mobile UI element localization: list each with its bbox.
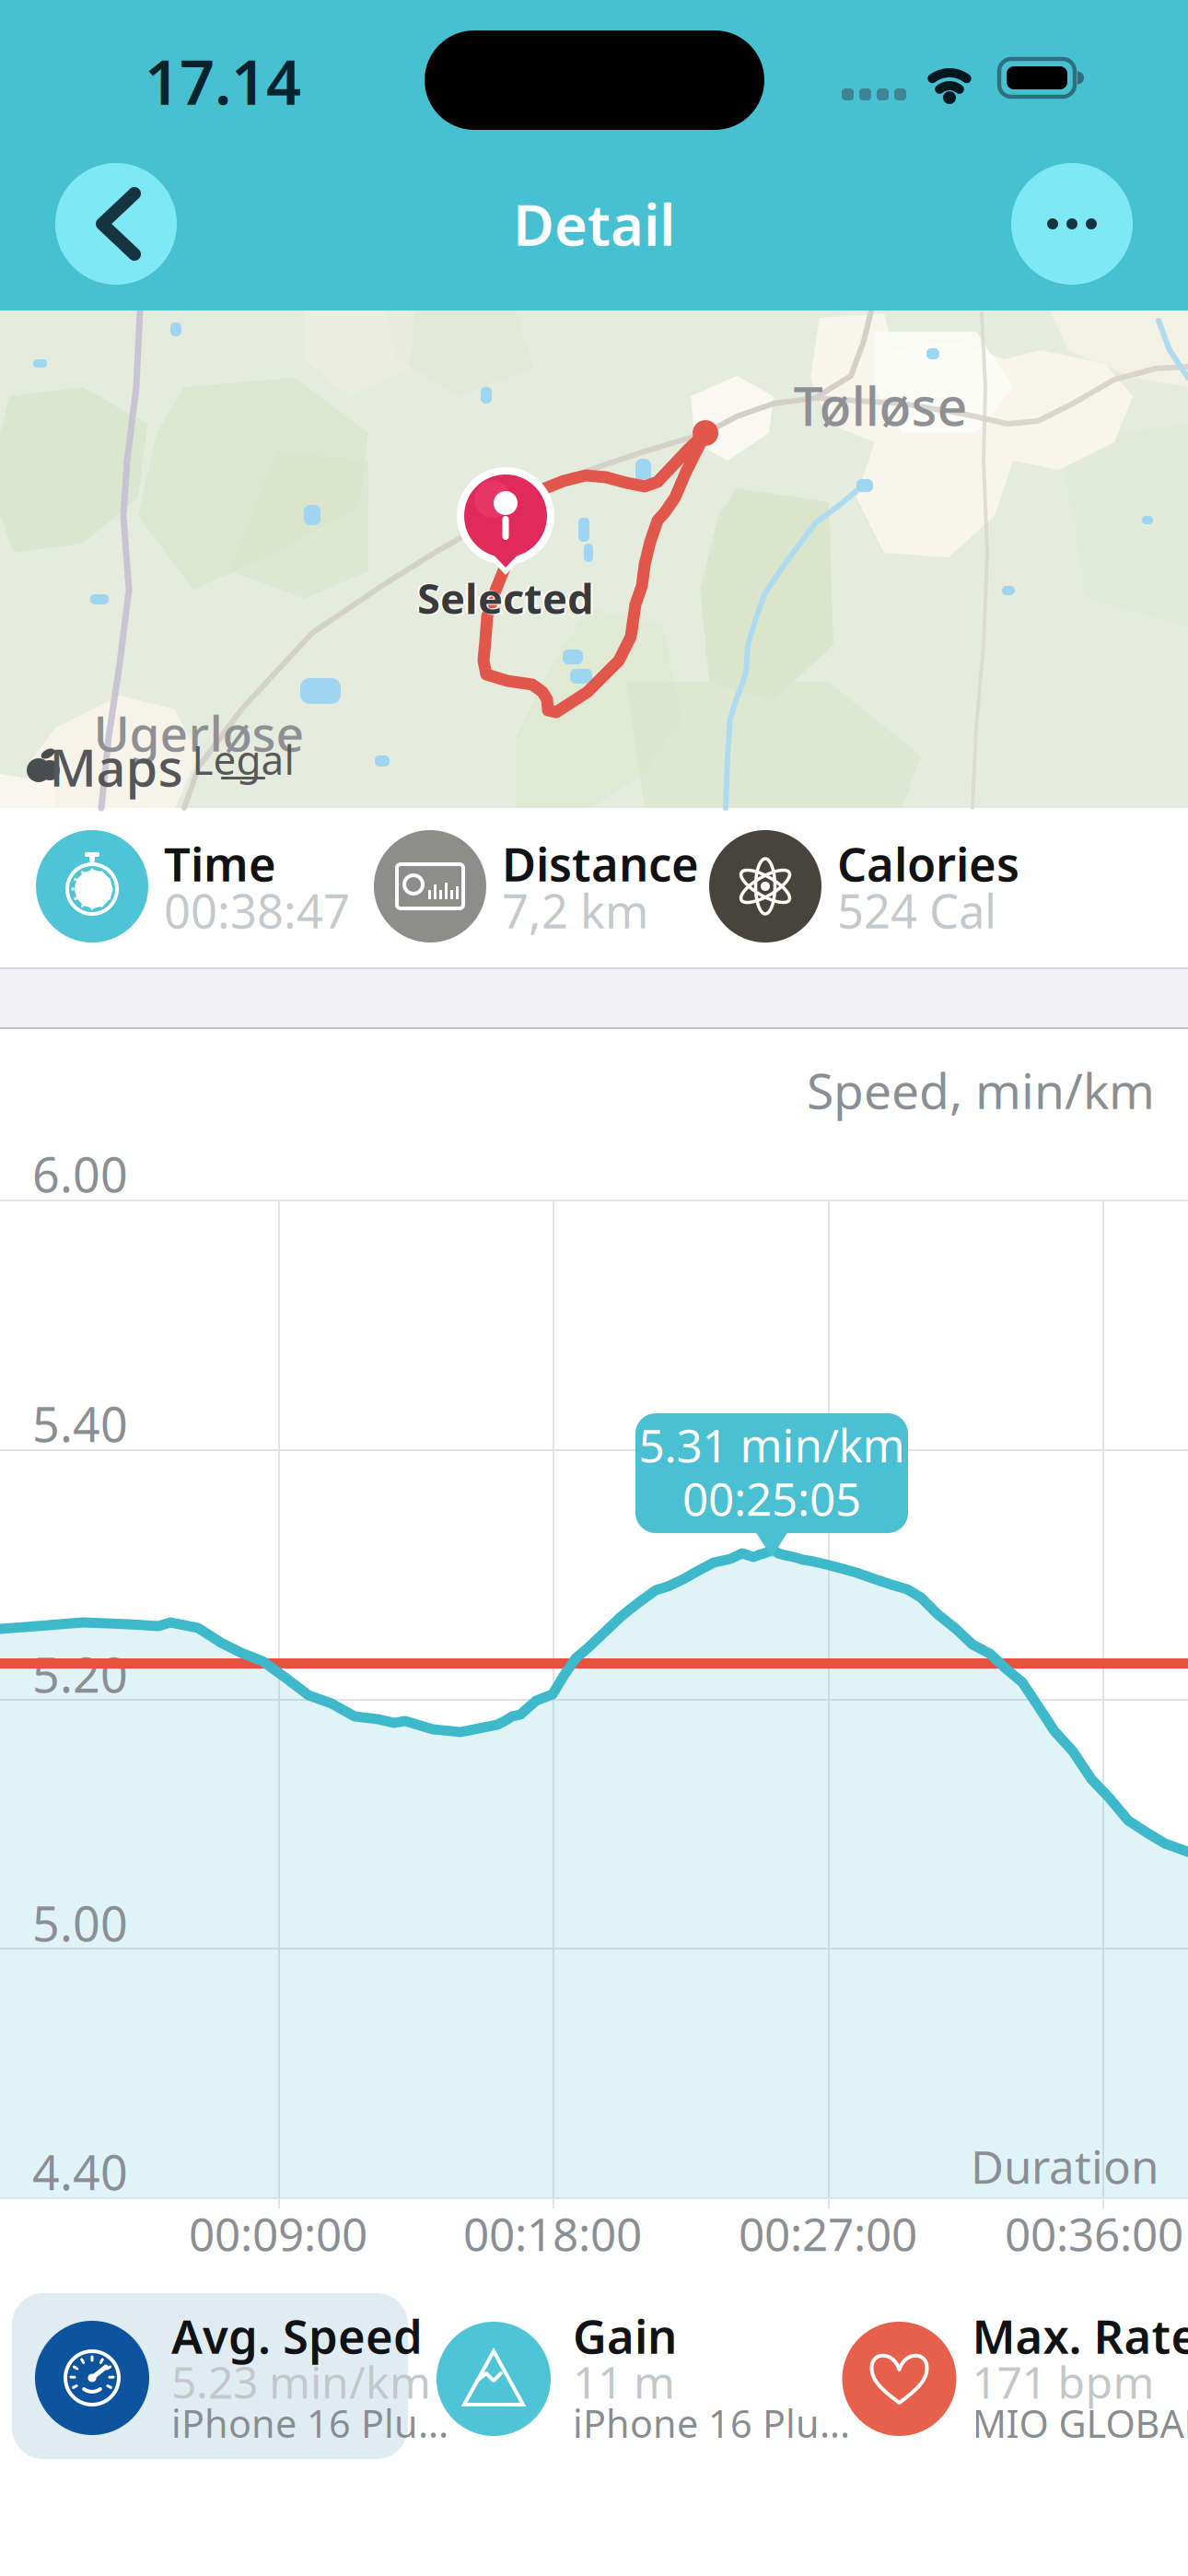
button[interactable]: Max. Rate (842, 2293, 1188, 2459)
staticText: 5.40 (32, 1392, 128, 1455)
staticText: Tølløse (793, 370, 967, 440)
staticText: 4.40 (32, 2140, 128, 2203)
button[interactable]: Avg. Speed (12, 2293, 408, 2459)
staticText: 17.14 (145, 40, 301, 122)
staticText: 171 bpm (972, 2352, 1154, 2411)
button[interactable]: More (1011, 163, 1133, 285)
button[interactable]: Gain (437, 2293, 833, 2459)
staticText: MIO GLOBAL L (972, 2398, 1188, 2448)
staticText: 5.23 min/km (171, 2352, 431, 2411)
staticText: Max. Rate (972, 2305, 1188, 2367)
staticText: 11 m (573, 2352, 675, 2411)
staticText: iPhone 16 Plu... (171, 2398, 448, 2448)
staticText: Detail (513, 186, 675, 261)
staticText: 00:25:05 (682, 1468, 861, 1528)
staticText: 00:36:00 (1005, 2203, 1183, 2263)
staticText: Gain (573, 2305, 677, 2367)
staticText: 6.00 (32, 1142, 128, 1206)
staticText: 00:09:00 (189, 2203, 367, 2263)
staticText: 00:18:00 (463, 2203, 642, 2263)
staticText: Selected (417, 570, 594, 626)
staticText: Avg. Speed (171, 2305, 423, 2367)
staticText: Speed, min/km (807, 1057, 1155, 1123)
staticText: Duration (971, 2136, 1159, 2196)
button[interactable]: Legal (202, 744, 285, 791)
staticText: 5.31 min/km (639, 1414, 905, 1475)
staticText: Distance (502, 832, 699, 894)
staticText: Calories (837, 832, 1019, 894)
staticText: 524 Cal (837, 879, 996, 941)
staticText: iPhone 16 Plu... (573, 2398, 850, 2448)
staticText: 00:38:47 (164, 879, 350, 941)
staticText: 5.00 (32, 1891, 128, 1955)
staticText: Selected (415, 569, 592, 625)
staticText: 5.20 (32, 1642, 128, 1706)
staticText: Selected (419, 571, 596, 627)
staticText: Time (164, 832, 276, 894)
staticText: Ugerløse (93, 700, 304, 765)
staticText: 7,2 km (502, 879, 648, 941)
staticText: Maps (49, 732, 183, 801)
staticText: 00:27:00 (739, 2203, 917, 2263)
staticText: Legal (192, 732, 294, 786)
button[interactable]: Back (55, 163, 177, 285)
